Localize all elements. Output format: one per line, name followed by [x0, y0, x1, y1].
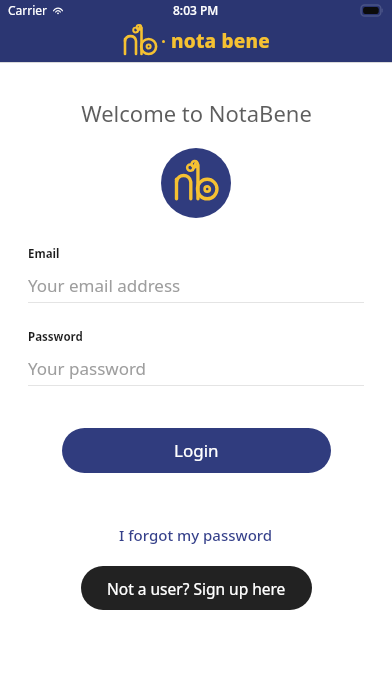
staticText: Not a user? Sign up here: [107, 578, 286, 599]
staticText: I forgot my password: [119, 525, 273, 545]
other: Wi-Fi: [52, 4, 64, 16]
button[interactable]: I forgot my password: [119, 525, 273, 545]
staticText: Welcome to NotaBene: [81, 98, 312, 128]
other: Battery: [361, 5, 383, 16]
button[interactable]: Your password: [28, 355, 364, 381]
staticText: 8:03 PM: [173, 2, 219, 18]
staticText: Login: [174, 439, 219, 462]
button[interactable]: Login: [62, 428, 331, 473]
staticText: nota bene: [171, 28, 270, 54]
staticText: Carrier: [8, 2, 48, 18]
staticText: Your password: [28, 357, 147, 380]
staticText: Your email address: [28, 274, 181, 297]
staticText: Password: [28, 329, 83, 345]
button[interactable]: Not a user? Sign up here: [81, 566, 312, 610]
button[interactable]: Your email address: [28, 272, 364, 298]
staticText: Email: [28, 246, 60, 262]
